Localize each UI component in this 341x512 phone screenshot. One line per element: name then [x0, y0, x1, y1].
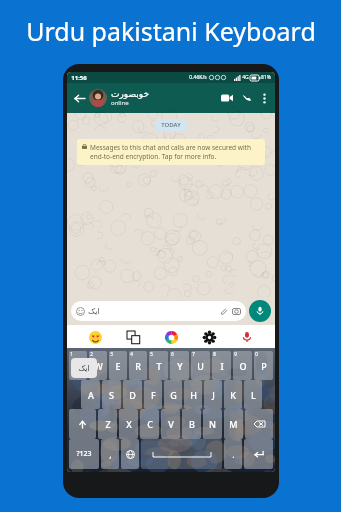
button[interactable]: Backspace	[245, 409, 273, 439]
button[interactable]: E	[109, 351, 127, 380]
button[interactable]: A	[81, 380, 100, 409]
staticText: 1	[70, 351, 73, 357]
button[interactable]: Q	[69, 351, 87, 380]
staticText: ,	[109, 448, 112, 460]
button[interactable]: R	[129, 351, 147, 380]
button[interactable]: ,	[101, 439, 119, 469]
staticText: Q	[74, 360, 82, 372]
button[interactable]: P	[254, 351, 273, 380]
staticText: online	[111, 99, 129, 107]
button[interactable]: L	[244, 380, 262, 409]
staticText: S	[109, 389, 114, 401]
button[interactable]: Video call	[217, 88, 237, 108]
staticText: D	[129, 389, 136, 401]
staticText: 3	[110, 351, 113, 357]
staticText: X	[126, 418, 132, 430]
staticText: L	[251, 389, 256, 401]
staticText: M	[229, 418, 238, 430]
button[interactable]: Settings	[199, 327, 219, 347]
button[interactable]: Back	[71, 90, 87, 106]
staticText: 2	[90, 351, 93, 357]
staticText: H	[190, 389, 197, 401]
button[interactable]: Change language	[121, 439, 139, 469]
staticText: B	[189, 418, 195, 430]
button[interactable]: O	[233, 351, 252, 380]
staticText: N	[209, 418, 216, 430]
button[interactable]: D	[123, 380, 142, 409]
button[interactable]: More options	[257, 91, 271, 105]
button[interactable]: F	[144, 380, 162, 409]
staticText: 9	[234, 351, 237, 357]
button[interactable]: Shift	[69, 409, 96, 439]
staticText: 4	[130, 351, 133, 357]
button[interactable]: V	[161, 409, 180, 439]
button[interactable]: W	[89, 351, 107, 380]
staticText: ایک	[88, 307, 100, 316]
staticText: I	[220, 360, 224, 372]
staticText: J	[212, 389, 215, 401]
button[interactable]: Translate	[123, 327, 143, 347]
button[interactable]: Contact photo	[89, 89, 107, 107]
staticText: 6	[171, 351, 174, 357]
staticText: 8	[213, 351, 216, 357]
staticText: ?123	[76, 449, 92, 459]
staticText: 7	[192, 351, 195, 357]
button[interactable]: ایک	[76, 301, 241, 321]
staticText: Z	[105, 418, 111, 430]
button[interactable]: I	[212, 351, 231, 380]
staticText: 81%	[261, 74, 271, 81]
staticText: K	[230, 389, 236, 401]
staticText: ایک	[78, 364, 90, 373]
staticText: 0	[255, 351, 258, 357]
button[interactable]: J	[204, 380, 222, 409]
staticText: V	[168, 418, 174, 430]
staticText: T	[156, 360, 162, 372]
staticText: .	[232, 448, 235, 460]
staticText: R	[135, 360, 141, 372]
staticText: G	[170, 389, 177, 401]
button[interactable]: H	[184, 380, 202, 409]
button[interactable]: N	[203, 409, 222, 439]
button[interactable]: Theme colors	[161, 327, 181, 347]
button[interactable]: Voice call	[237, 88, 257, 108]
button[interactable]: Voice input	[237, 327, 257, 347]
button[interactable]: Space	[141, 439, 222, 469]
staticText: 0.46K/s	[189, 74, 207, 81]
button[interactable]: Y	[170, 351, 189, 380]
button[interactable]: S	[102, 380, 121, 409]
staticText: خوبصورت	[111, 89, 149, 99]
button[interactable]: U	[191, 351, 210, 380]
staticText: 5	[150, 351, 153, 357]
staticText: O	[239, 360, 247, 372]
staticText: P	[261, 360, 267, 372]
button[interactable]: Record voice message	[249, 300, 271, 322]
button[interactable]: Messages to this chat and calls are now …	[82, 143, 260, 161]
button[interactable]: K	[224, 380, 242, 409]
button[interactable]: Emoji	[85, 327, 105, 347]
button[interactable]: X	[119, 409, 138, 439]
staticText: 11:56	[71, 74, 87, 82]
staticText: C	[147, 418, 153, 430]
button[interactable]: ?123	[69, 439, 99, 469]
staticText: W	[94, 360, 103, 372]
staticText: 4G	[242, 74, 249, 81]
button[interactable]: B	[182, 409, 201, 439]
button[interactable]: Enter	[244, 439, 273, 469]
button[interactable]: C	[140, 409, 159, 439]
staticText: A	[88, 389, 94, 401]
button[interactable]: .	[224, 439, 242, 469]
button[interactable]: M	[224, 409, 243, 439]
staticText: Y	[177, 360, 183, 372]
staticText: TODAY	[161, 121, 181, 129]
staticText: Urdu pakistani Keyboard	[26, 14, 316, 48]
staticText: Messages to this chat and calls are now …	[90, 143, 260, 161]
button[interactable]: Z	[98, 409, 117, 439]
button[interactable]: T	[149, 351, 168, 380]
button[interactable]: G	[164, 380, 182, 409]
staticText: F	[151, 389, 156, 401]
staticText: E	[115, 360, 121, 372]
staticText: U	[197, 360, 204, 372]
